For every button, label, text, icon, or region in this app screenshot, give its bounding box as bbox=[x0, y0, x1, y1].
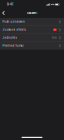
button[interactable]: Zvukové efekty bbox=[0, 26, 64, 33]
button[interactable]: Jednotky bbox=[0, 34, 64, 41]
button[interactable]: Back bbox=[0, 9, 8, 17]
staticText: Nastavení bbox=[26, 11, 37, 15]
staticText: km bbox=[52, 36, 56, 39]
staticText: Zvukové efekty bbox=[2, 28, 26, 31]
staticText: Push oznámení bbox=[2, 20, 25, 23]
staticText: 9:41 bbox=[7, 3, 13, 6]
button[interactable]: Přehled funkcí bbox=[0, 42, 64, 49]
button[interactable]: Push oznámení bbox=[0, 18, 64, 26]
staticText: Jednotky bbox=[2, 36, 17, 39]
staticText: Přehled funkcí bbox=[2, 44, 24, 47]
